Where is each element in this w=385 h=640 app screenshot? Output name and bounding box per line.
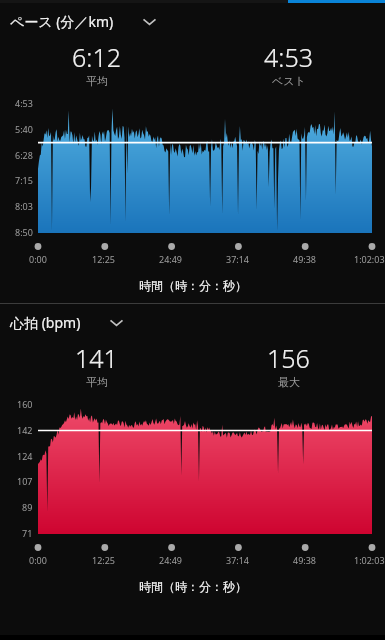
staticText: 0:00 <box>29 253 47 265</box>
staticText: 0:00 <box>29 554 47 566</box>
button[interactable]: Change metric <box>103 309 129 335</box>
staticText: 37:14 <box>226 554 250 566</box>
staticText: 49:38 <box>293 253 317 265</box>
staticText: ペース (分／km) <box>10 12 114 31</box>
staticText: 平均 <box>86 74 108 88</box>
staticText: 4:53 <box>264 40 313 74</box>
staticText: 71 <box>22 527 33 539</box>
staticText: 8:50 <box>15 226 33 238</box>
staticText: 24:49 <box>159 253 183 265</box>
staticText: 時間（時：分：秒） <box>139 278 247 293</box>
staticText: 12:25 <box>92 554 116 566</box>
staticText: 最大 <box>278 375 300 389</box>
staticText: 5:40 <box>15 123 33 135</box>
staticText: 4:53 <box>15 97 33 109</box>
staticText: 1:02:03 <box>354 253 385 265</box>
staticText: 142 <box>17 424 33 436</box>
staticText: 8:03 <box>15 200 33 212</box>
staticText: 160 <box>17 398 33 410</box>
staticText: 89 <box>22 501 33 513</box>
staticText: 6:12 <box>72 40 121 74</box>
staticText: 12:25 <box>92 253 116 265</box>
staticText: 6:28 <box>15 149 33 161</box>
staticText: ベスト <box>272 74 306 88</box>
staticText: 141 <box>75 341 118 375</box>
staticText: 心拍 (bpm) <box>10 313 81 332</box>
staticText: 7:15 <box>15 174 33 186</box>
button[interactable]: Change metric <box>136 8 162 34</box>
staticText: 平均 <box>86 375 108 389</box>
staticText: 107 <box>17 475 33 487</box>
staticText: 156 <box>267 341 310 375</box>
staticText: 124 <box>17 450 33 462</box>
staticText: 24:49 <box>159 554 183 566</box>
staticText: 1:02:03 <box>354 554 385 566</box>
staticText: 時間（時：分：秒） <box>139 579 247 594</box>
staticText: 37:14 <box>226 253 250 265</box>
staticText: 49:38 <box>293 554 317 566</box>
